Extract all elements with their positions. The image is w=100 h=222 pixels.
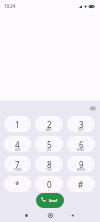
button[interactable]: #: [67, 176, 95, 192]
staticText: DEF: [78, 128, 84, 132]
button[interactable]: 3: [67, 116, 95, 132]
staticText: GHI: [15, 148, 21, 152]
button[interactable]: 4: [4, 136, 31, 152]
button[interactable]: Anruf: [36, 193, 64, 208]
staticText: 9: [79, 159, 84, 170]
staticText: 6: [79, 139, 84, 150]
staticText: 10:24: [4, 3, 16, 9]
staticText: ABC: [46, 128, 52, 132]
button[interactable]: Back: [65, 208, 79, 222]
button[interactable]: 1: [4, 116, 31, 132]
staticText: Anruf: [49, 199, 58, 203]
staticText: 4: [15, 139, 20, 150]
staticText: JKL: [47, 148, 52, 152]
button[interactable]: 6: [67, 136, 95, 152]
staticText: MNO: [77, 148, 85, 152]
button[interactable]: *: [4, 176, 31, 192]
button[interactable]: Backspace: [85, 101, 100, 116]
staticText: 8: [47, 159, 52, 170]
button[interactable]: 0: [35, 176, 63, 192]
staticText: WXYZ: [77, 168, 86, 172]
button[interactable]: 9: [67, 156, 95, 172]
staticText: #: [78, 179, 84, 190]
button[interactable]: Home: [43, 208, 57, 222]
button[interactable]: 2: [35, 116, 63, 132]
button[interactable]: 7: [4, 156, 31, 172]
staticText: TUV: [46, 168, 52, 172]
staticText: 2: [47, 119, 52, 130]
button[interactable]: 8: [35, 156, 63, 172]
staticText: *: [15, 179, 20, 190]
button[interactable]: 5: [35, 136, 63, 152]
staticText: 5: [47, 139, 52, 150]
staticText: PQRS: [14, 168, 22, 172]
staticText: 1: [15, 119, 20, 130]
staticText: +: [48, 188, 50, 192]
button[interactable]: Recents: [19, 208, 33, 222]
staticText: 3: [79, 119, 84, 130]
staticText: 7: [15, 159, 20, 170]
staticText: 0: [47, 179, 52, 190]
